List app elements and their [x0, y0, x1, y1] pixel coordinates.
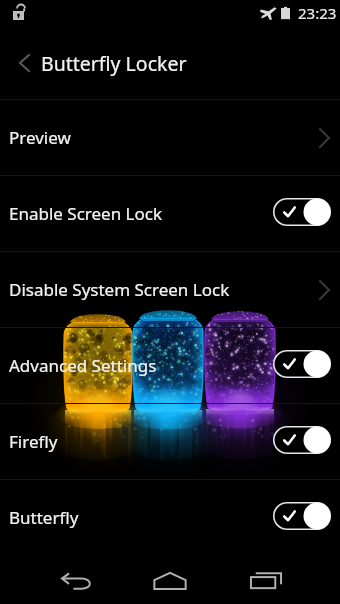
staticText: 23:23: [298, 3, 337, 23]
button[interactable]: Preview: [0, 100, 340, 175]
button[interactable]: Toggle: [273, 350, 331, 378]
button[interactable]: Back: [44, 557, 108, 604]
button[interactable]: Advanced Settings: [0, 328, 340, 403]
button[interactable]: Butterfly: [0, 480, 340, 555]
staticText: Firefly: [9, 430, 58, 453]
button[interactable]: Home: [138, 557, 202, 604]
button[interactable]: Firefly: [0, 404, 340, 479]
button[interactable]: Toggle: [273, 502, 331, 530]
button[interactable]: Back: [4, 43, 44, 83]
staticText: Disable System Screen Lock: [9, 278, 230, 301]
button[interactable]: Toggle: [273, 198, 331, 226]
button[interactable]: Toggle: [273, 426, 331, 454]
button[interactable]: Enable Screen Lock: [0, 176, 340, 251]
staticText: Butterfly Locker: [41, 50, 187, 77]
staticText: Preview: [9, 126, 71, 149]
staticText: Butterfly: [9, 506, 79, 529]
button[interactable]: Recent apps: [234, 557, 298, 604]
staticText: Enable Screen Lock: [9, 202, 163, 225]
button[interactable]: Disable System Screen Lock: [0, 252, 340, 327]
staticText: Advanced Settings: [9, 354, 157, 377]
